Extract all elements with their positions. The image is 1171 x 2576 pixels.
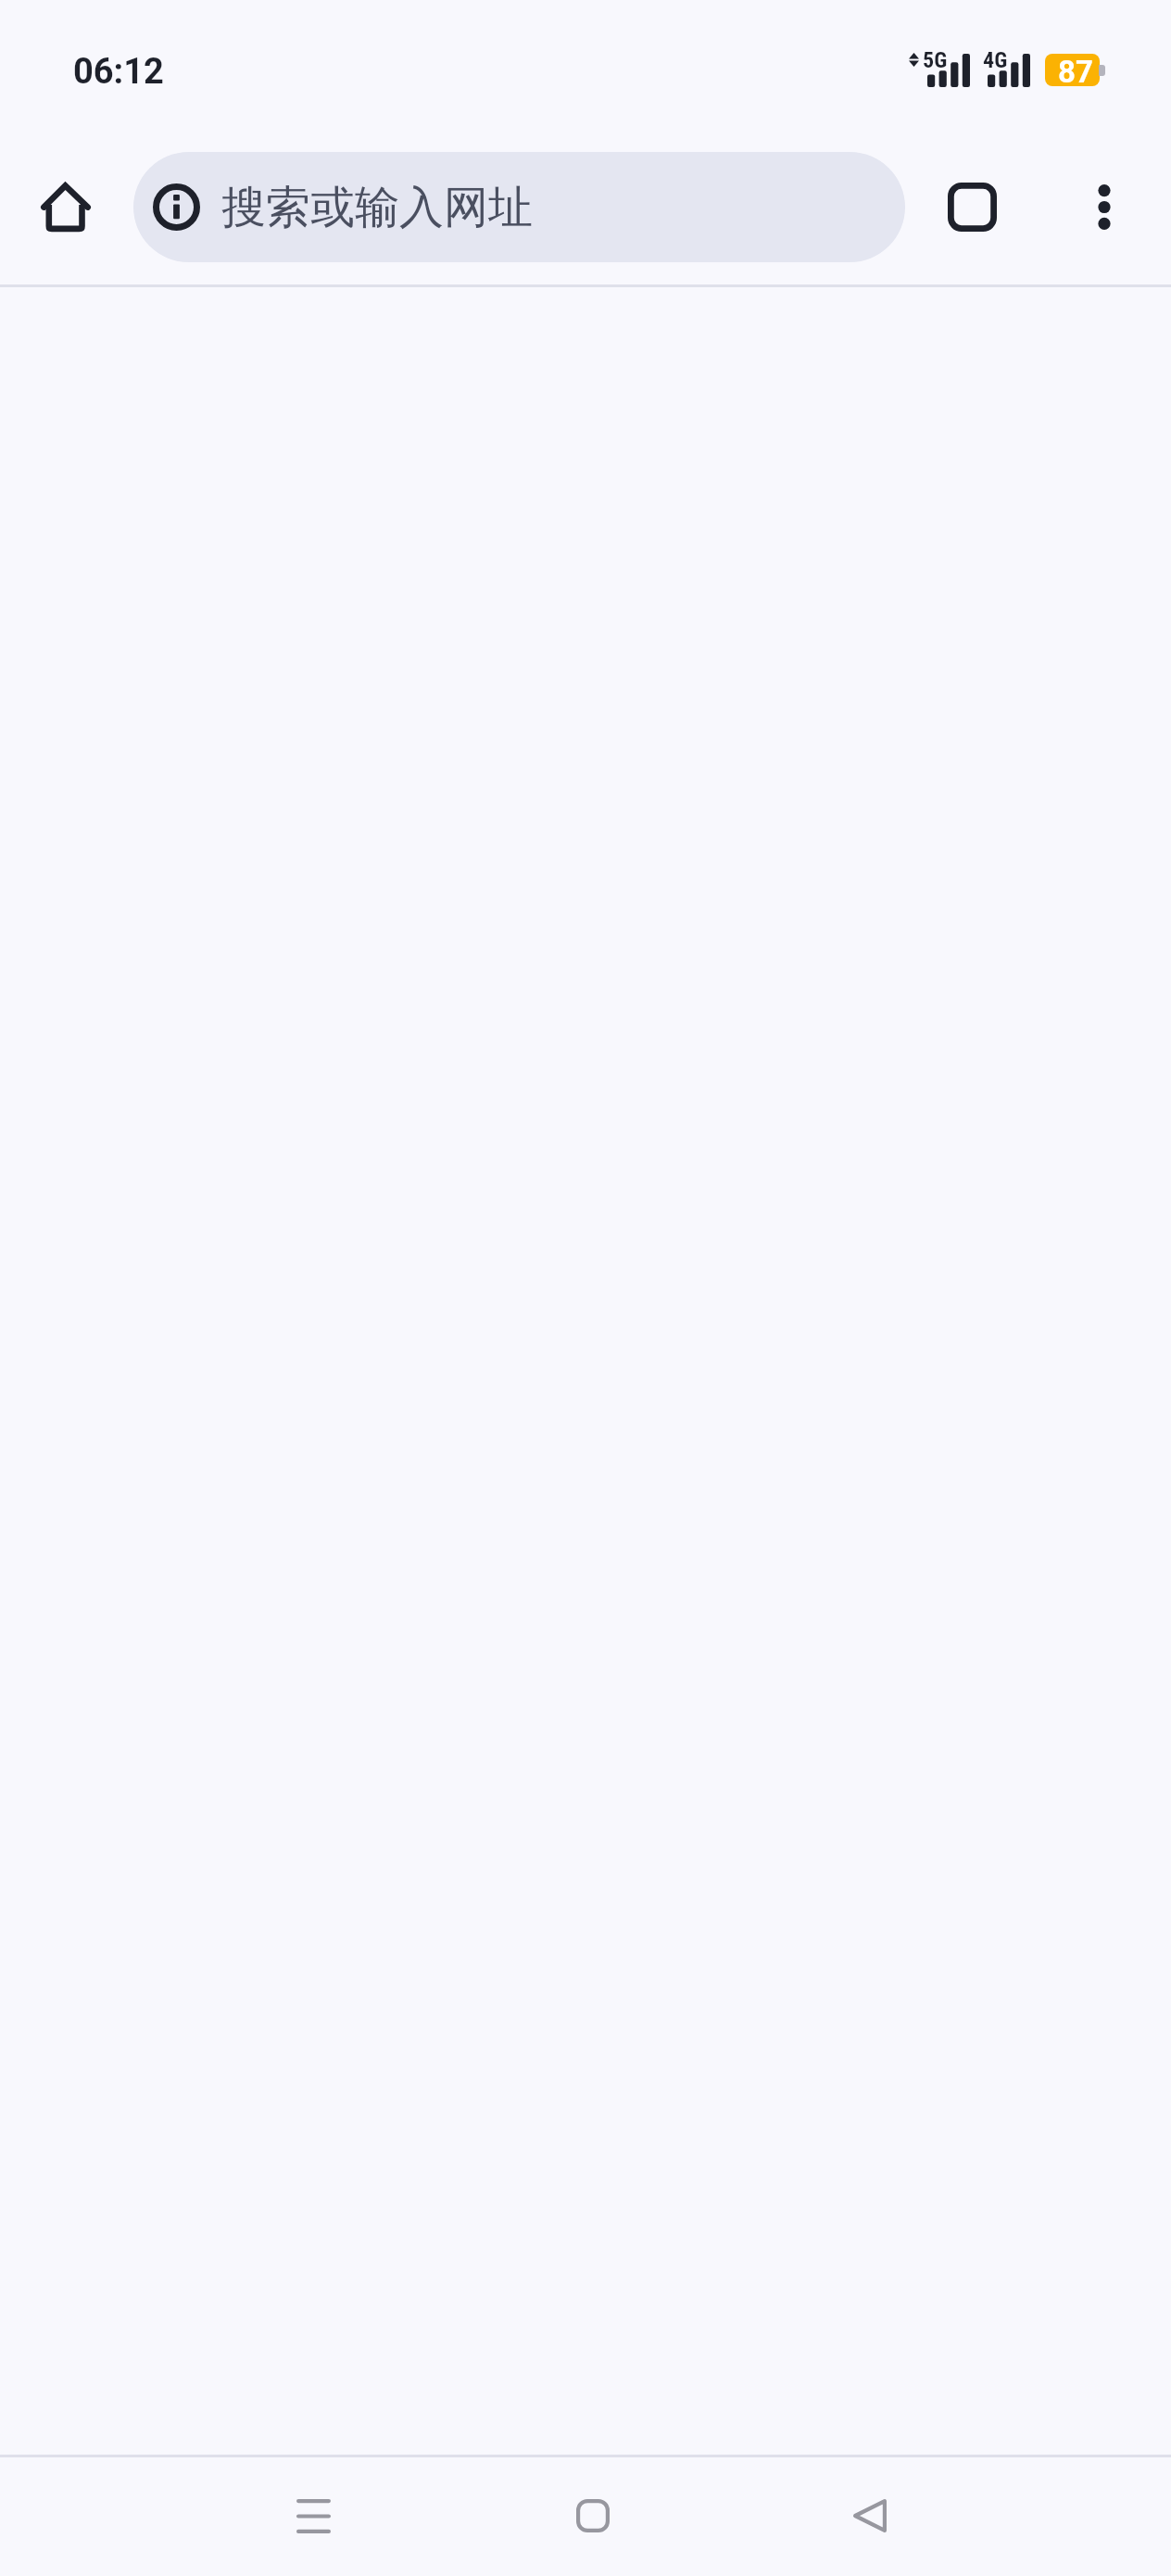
button[interactable]: Recent apps xyxy=(258,2460,369,2571)
button[interactable]: 搜索或输入网址 xyxy=(133,152,905,262)
button[interactable]: Home xyxy=(537,2460,648,2571)
button[interactable]: Home page xyxy=(12,154,120,261)
staticText: 搜索或输入网址 xyxy=(221,180,533,235)
staticText: 87 xyxy=(1058,54,1093,87)
button[interactable]: Back xyxy=(814,2460,925,2571)
button[interactable]: More options xyxy=(1055,158,1153,256)
staticText: 06:12 xyxy=(73,51,164,93)
staticText: 4G xyxy=(983,47,1008,73)
button[interactable]: Switch or open tabs xyxy=(923,158,1021,256)
staticText: 5G xyxy=(923,47,948,73)
